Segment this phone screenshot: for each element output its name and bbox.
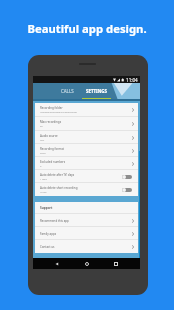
button[interactable]: Recording folder: [35, 103, 138, 117]
button[interactable]: Audio source: [35, 131, 138, 144]
button[interactable]: Excluded numbers: [35, 157, 138, 170]
staticText: SETTINGS: [86, 88, 107, 94]
staticText: Auto delete after 'N' days: [40, 173, 75, 177]
button[interactable]: Recommend this app: [35, 214, 138, 227]
button[interactable]: Auto delete after 'N' days: [35, 170, 138, 183]
staticText: CALLS: [61, 88, 74, 94]
staticText: Family apps: [40, 232, 57, 236]
button[interactable]: Auto delete short recording: [35, 183, 138, 196]
button[interactable]: CALLS: [53, 83, 82, 99]
staticText: Recording format: [40, 147, 64, 151]
staticText: 1 days: [40, 178, 47, 181]
button[interactable]: Family apps: [35, 227, 138, 240]
staticText: 0: [40, 165, 42, 168]
staticText: Beautiful app design.: [0, 21, 174, 36]
staticText: Max recordings: [40, 120, 62, 124]
button[interactable]: Contact us: [35, 240, 138, 253]
button[interactable]: Recording format: [35, 144, 138, 157]
staticText: Recording folder: [40, 106, 63, 110]
staticText: /storage/emulated/0/CallRecorder: [40, 111, 77, 114]
button[interactable]: Max recordings: [35, 117, 138, 131]
button[interactable]: Home: [82, 259, 92, 269]
staticText: Contact us: [40, 245, 55, 249]
staticText: Excluded numbers: [40, 160, 66, 164]
staticText: MIC: [40, 139, 45, 142]
staticText: Auto delete short recording: [40, 186, 78, 190]
staticText: Support: [40, 206, 53, 210]
button[interactable]: SETTINGS: [82, 83, 111, 99]
staticText: Recommend this app: [40, 219, 69, 223]
staticText: Audio source: [40, 134, 58, 138]
staticText: 11:04: [126, 77, 138, 83]
staticText: 50: [40, 125, 43, 128]
staticText: 3GPP: [40, 152, 46, 155]
button[interactable]: Back: [52, 259, 62, 269]
staticText: 10 sec: [40, 191, 47, 194]
button[interactable]: Recents: [111, 259, 121, 269]
